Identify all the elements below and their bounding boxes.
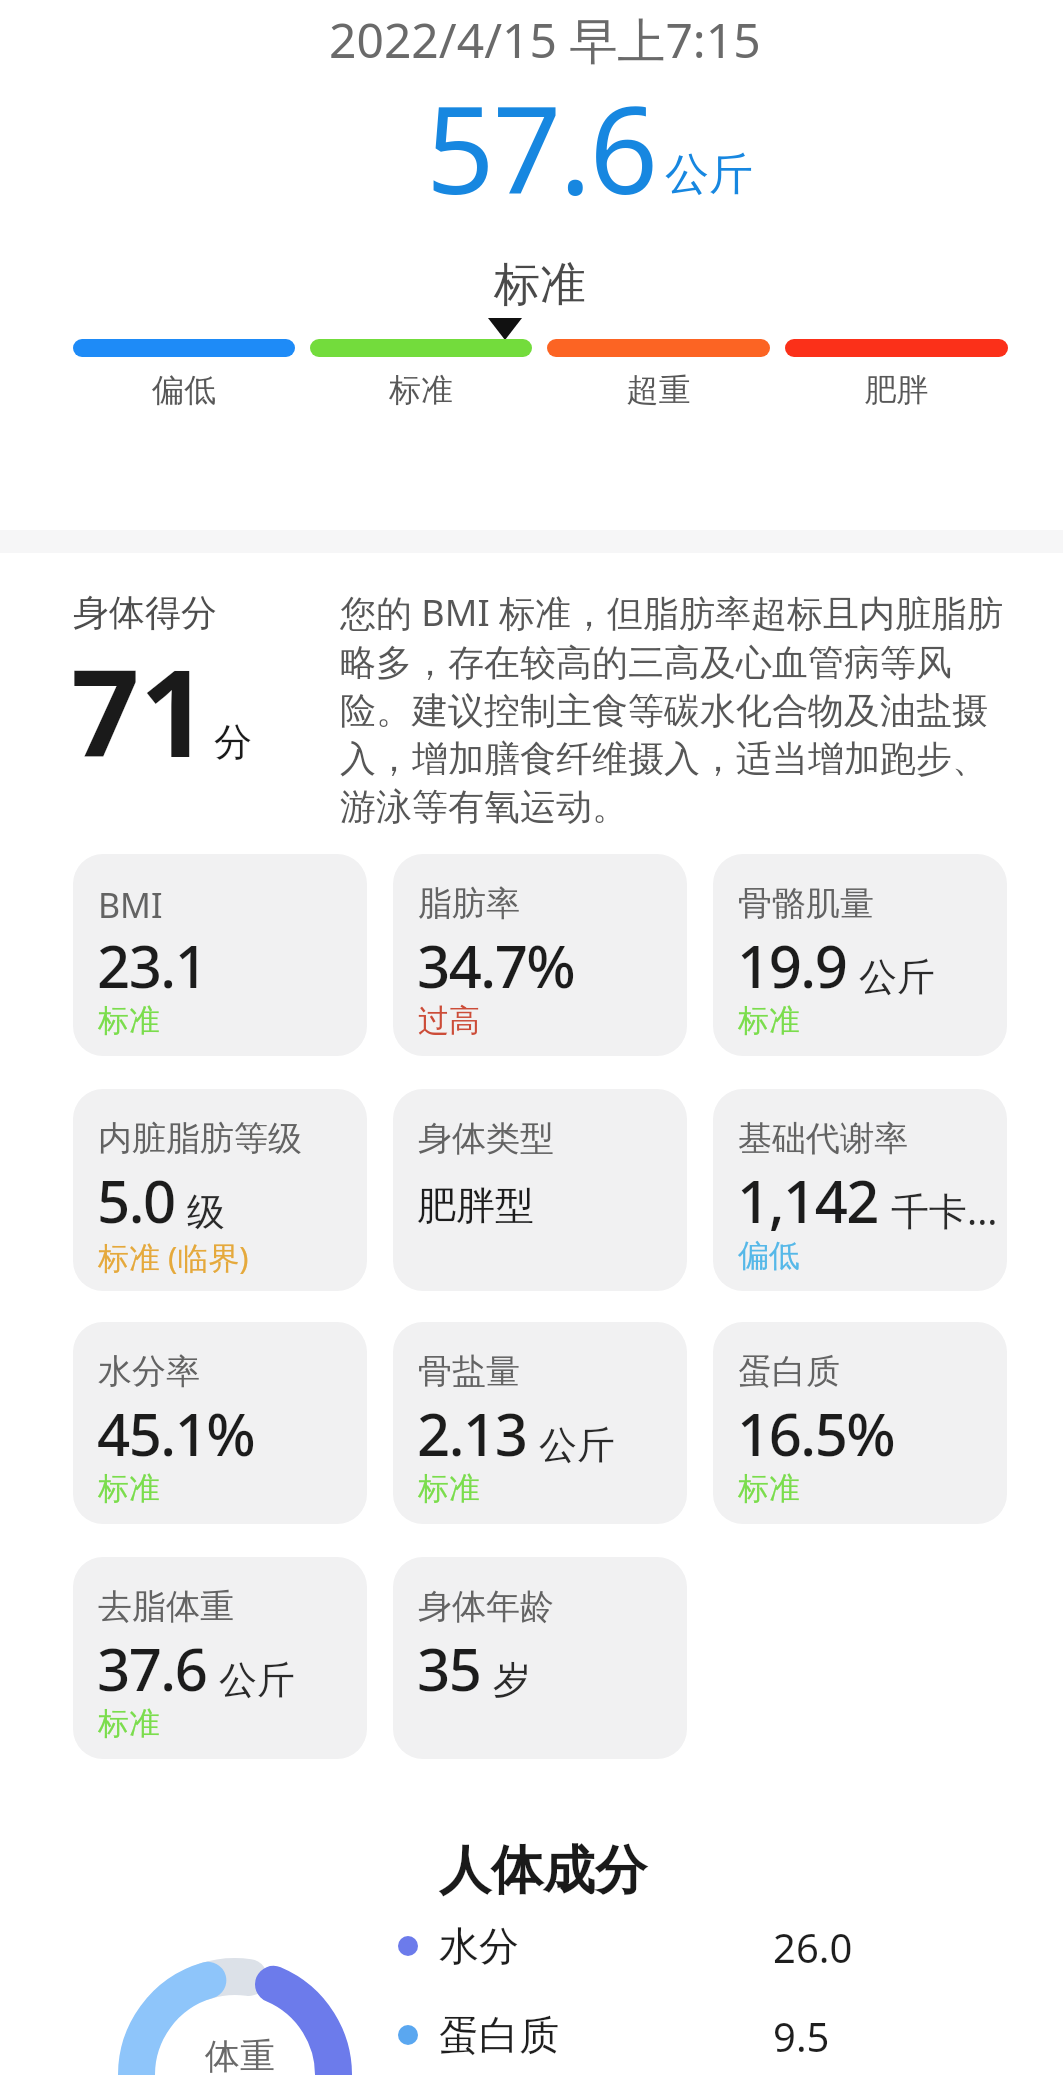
staticText: 标准 <box>310 370 532 410</box>
button[interactable]: 身体年龄 <box>393 1557 687 1759</box>
staticText: 公斤 <box>219 1656 295 1704</box>
staticText: 身体年龄 <box>418 1585 554 1628</box>
staticText: 蛋白质 <box>738 1350 840 1393</box>
staticText: 公斤 <box>539 1421 615 1469</box>
staticText: 16.5% <box>737 1394 895 1473</box>
button[interactable]: 骨骼肌量 <box>713 854 1007 1056</box>
button[interactable]: 偏低 <box>73 370 295 410</box>
staticText: 岁 <box>493 1656 531 1704</box>
staticText: 内脏脂肪等级 <box>98 1117 302 1160</box>
staticText: 肥胖型 <box>417 1181 534 1230</box>
staticText: 偏低 <box>73 370 295 410</box>
staticText: 超重 <box>547 370 770 410</box>
staticText: 5.0 <box>97 1161 175 1240</box>
staticText: 公斤 <box>859 953 935 1001</box>
button[interactable]: 水分率 <box>73 1322 367 1524</box>
staticText: 标准 <box>98 1001 160 1040</box>
staticText: BMI <box>98 882 163 928</box>
other: Weight category marker <box>0 0 1063 2075</box>
button[interactable]: BMI <box>73 854 367 1056</box>
button[interactable]: 蛋白质 <box>713 1322 1007 1524</box>
staticText: 骨盐量 <box>418 1350 520 1393</box>
staticText: 脂肪率 <box>418 882 520 925</box>
staticText: 2.13 <box>417 1394 527 1473</box>
staticText: 34.7% <box>417 926 575 1005</box>
staticText: 过高 <box>418 1001 480 1040</box>
button[interactable]: 2022/4/15 早上7:15 <box>329 7 761 73</box>
staticText: 标准 (临界) <box>98 1236 249 1278</box>
button[interactable]: 脂肪率 <box>393 854 687 1056</box>
staticText: 水分率 <box>98 1350 200 1393</box>
button[interactable]: 去脂体重 <box>73 1557 367 1759</box>
staticText: 标准 <box>98 1469 160 1508</box>
staticText: 标准 <box>418 1469 480 1508</box>
staticText: 身体类型 <box>418 1117 554 1160</box>
button[interactable]: 标准 <box>310 370 532 410</box>
staticText: 23.1 <box>97 926 207 1005</box>
staticText: 标准 <box>494 256 586 314</box>
button[interactable]: 身体类型 <box>393 1089 687 1291</box>
button[interactable]: 骨盐量 <box>393 1322 687 1524</box>
staticText: 水分 <box>439 1921 773 1971</box>
staticText: 9.5 <box>773 2009 830 2061</box>
button[interactable]: 水分 <box>398 1920 898 1972</box>
staticText: 去脂体重 <box>98 1585 234 1628</box>
staticText: 基础代谢率 <box>738 1117 908 1160</box>
button[interactable]: 内脏脂肪等级 <box>73 1089 367 1291</box>
button[interactable]: 基础代谢率 <box>713 1089 1007 1291</box>
staticText: 身体得分 <box>73 590 217 635</box>
staticText: 分 <box>214 718 252 766</box>
staticText: 45.1% <box>97 1394 255 1473</box>
staticText: 肥胖 <box>785 370 1008 410</box>
staticText: 骨骼肌量 <box>738 882 874 925</box>
staticText: 19.9 <box>737 926 847 1005</box>
button[interactable]: 超重 <box>547 370 770 410</box>
staticText: 57.6 <box>426 66 657 229</box>
staticText: 千卡... <box>891 1184 998 1236</box>
staticText: 71 <box>71 629 209 792</box>
staticText: 37.6 <box>97 1629 207 1708</box>
staticText: 体重 <box>205 2034 275 2075</box>
staticText: 标准 <box>98 1704 160 1743</box>
staticText: 1,142 <box>737 1161 879 1240</box>
staticText: 蛋白质 <box>439 2010 773 2060</box>
staticText: 级 <box>187 1188 225 1236</box>
staticText: 偏低 <box>738 1236 800 1275</box>
staticText: 35 <box>417 1629 481 1708</box>
staticText: 人体成分 <box>439 1838 647 1904</box>
staticText: 26.0 <box>773 1920 853 1972</box>
other: Body composition chart <box>0 0 1063 2075</box>
button[interactable]: 蛋白质 <box>398 2009 898 2061</box>
staticText: 标准 <box>738 1469 800 1508</box>
staticText: 公斤 <box>665 147 753 202</box>
staticText: 标准 <box>738 1001 800 1040</box>
staticText: 您的 BMI 标准，但脂肪率超标且内脏脂肪略多，存在较高的三高及心血管病等风险。… <box>340 588 1020 830</box>
button[interactable]: 肥胖 <box>785 370 1008 410</box>
